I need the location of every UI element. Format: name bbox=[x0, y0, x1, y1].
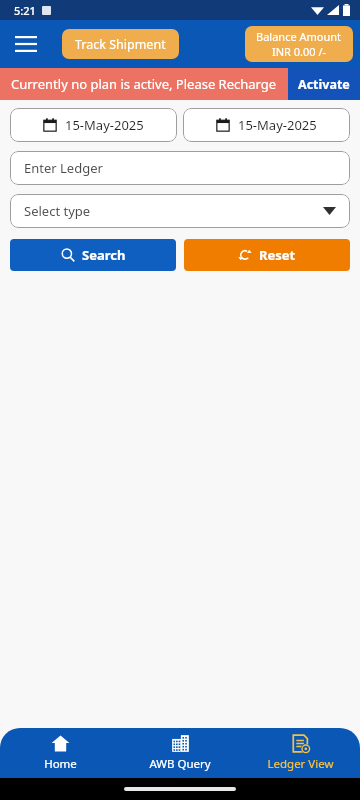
button[interactable]: Track Shipment bbox=[62, 29, 179, 59]
staticText: Select type bbox=[24, 202, 91, 220]
staticText: Search bbox=[82, 246, 126, 264]
staticText: Ledger View bbox=[267, 756, 334, 772]
staticText: Enter Ledger bbox=[24, 159, 103, 177]
button[interactable]: 15-May-2025 bbox=[10, 108, 177, 142]
staticText: 5:21 bbox=[14, 3, 36, 18]
button[interactable]: Enter Ledger bbox=[10, 151, 350, 185]
button[interactable]: Activate bbox=[288, 68, 360, 100]
button[interactable]: Balance Amount bbox=[245, 26, 353, 62]
button[interactable]: Select type bbox=[10, 194, 350, 228]
button[interactable]: Home bbox=[0, 728, 120, 778]
staticText: Reset bbox=[259, 246, 296, 264]
staticText: Track Shipment bbox=[75, 36, 166, 53]
staticText: Home bbox=[44, 756, 77, 772]
button[interactable]: 15-May-2025 bbox=[183, 108, 350, 142]
staticText: Balance Amount bbox=[256, 29, 342, 44]
button[interactable]: Reset bbox=[184, 239, 350, 271]
staticText: INR 0.00 /- bbox=[272, 44, 327, 59]
staticText: Activate bbox=[298, 76, 350, 93]
staticText: AWB Query bbox=[149, 756, 211, 772]
staticText: Currently no plan is active, Please Rech… bbox=[11, 75, 277, 93]
button[interactable]: Open navigation menu bbox=[6, 24, 46, 64]
staticText: 15-May-2025 bbox=[65, 116, 144, 134]
button[interactable]: AWB Query bbox=[120, 728, 240, 778]
button[interactable]: Ledger View bbox=[240, 728, 360, 778]
button[interactable]: Search bbox=[10, 239, 176, 271]
staticText: 15-May-2025 bbox=[238, 116, 317, 134]
